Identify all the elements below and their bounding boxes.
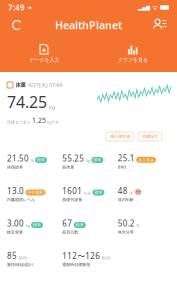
staticText: 太りぎみ (138, 157, 154, 162)
staticText: kg (25, 223, 29, 228)
staticText: 標準 (93, 157, 101, 162)
button[interactable]: 同期 (6, 16, 28, 34)
staticText: 体水分率 (118, 230, 134, 234)
button[interactable]: 67 (62, 218, 115, 234)
staticText: 目標まであと (7, 120, 31, 125)
staticText: 3.00 (7, 218, 24, 229)
staticText: ᯤ (150, 3, 160, 12)
staticText: 112〜126 (62, 250, 100, 261)
button[interactable]: 移行測定値 (106, 132, 134, 141)
staticText: kgです。 (47, 119, 63, 125)
staticText: 体重 (15, 82, 25, 88)
staticText: 標準 (76, 222, 84, 227)
staticText: % (136, 223, 139, 228)
button[interactable]: 85 (7, 250, 59, 267)
button[interactable]: グラフを見る (88, 37, 177, 69)
staticText: 標準 (33, 222, 41, 227)
button[interactable]: 3.00 (7, 218, 59, 234)
staticText: kcal (84, 190, 91, 195)
button[interactable]: 1601 (62, 185, 115, 202)
staticText: 標準 (37, 157, 45, 162)
staticText: 体脂肪率 (7, 165, 23, 169)
staticText: 拍/分 (18, 255, 27, 260)
staticText: 85 (7, 250, 17, 261)
staticText: 48 (118, 185, 128, 196)
staticText: 13.0 (7, 185, 24, 196)
staticText: 1.25 (32, 116, 46, 125)
staticText: 基礎代謝量 (62, 197, 82, 202)
button[interactable]: 112〜126 (62, 250, 115, 267)
staticText: 拍/分 (102, 255, 111, 260)
button[interactable]: プロフィール (149, 16, 171, 34)
staticText: やや過剰 (27, 190, 43, 195)
button[interactable]: 50.2 (118, 218, 170, 234)
staticText: 50.2 (118, 218, 135, 229)
staticText: 脈拍(体組成計) (7, 262, 33, 267)
staticText: 21.50 (7, 153, 29, 164)
staticText: 標準 (94, 190, 102, 195)
staticText: データを入力 (29, 57, 59, 63)
staticText: 内臓脂肪レベル (7, 197, 35, 202)
staticText: 運動時目標脈拍 (62, 262, 90, 267)
staticText: ◄ (25, 4, 31, 11)
staticText: 筋質点数 (62, 230, 78, 234)
staticText: kg (49, 104, 55, 111)
button[interactable]: 目標設定 (138, 132, 162, 141)
staticText: 67 (62, 218, 72, 229)
staticText: kg (86, 158, 90, 163)
button[interactable]: 48 (118, 185, 170, 202)
staticText: グラフを見る (118, 57, 148, 63)
staticText: 7:49 (8, 2, 25, 13)
staticText: ▂▄▆ (138, 4, 150, 11)
staticText: 推定骨量 (7, 230, 23, 234)
staticText: 55.25 (62, 153, 84, 164)
staticText: 4/27(火) 07:44 (28, 81, 62, 89)
staticText: 才 (129, 191, 133, 195)
staticText: 74.25 (7, 91, 47, 112)
button[interactable]: データを入力 (0, 37, 88, 69)
staticText: % (30, 158, 33, 163)
staticText: 体内年齢 (118, 197, 134, 202)
button[interactable]: 55.25 (62, 153, 115, 169)
staticText: 目標設定 (142, 134, 158, 139)
staticText: BMI (118, 164, 126, 170)
button[interactable]: 21.50 (7, 153, 59, 169)
button[interactable]: 13.0 (7, 185, 59, 202)
button[interactable]: 25.1 (118, 153, 170, 170)
staticText: HealthPlanet (55, 18, 122, 32)
staticText: 25.1 (118, 153, 135, 163)
staticText: 移行測定値 (110, 134, 130, 139)
staticText: 1601 (62, 185, 82, 196)
staticText: 筋肉量 (62, 165, 74, 169)
